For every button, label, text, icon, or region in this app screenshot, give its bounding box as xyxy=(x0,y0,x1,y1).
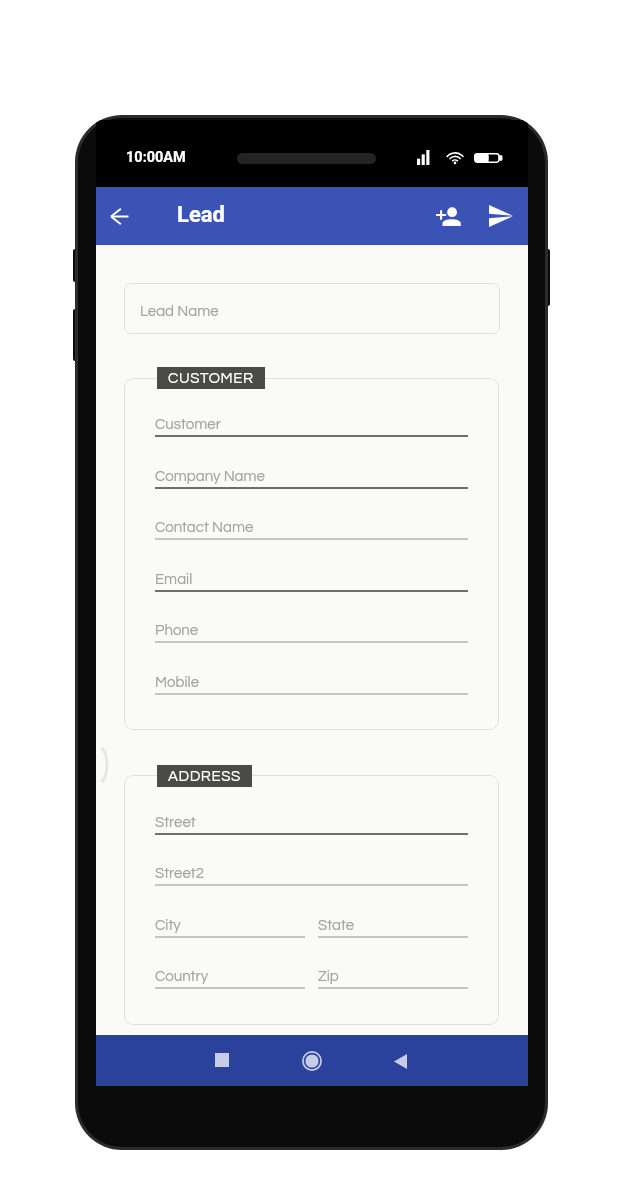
staticText: Mobile xyxy=(155,675,199,690)
button[interactable]: Country xyxy=(155,958,305,990)
button[interactable]: Mobile xyxy=(155,664,468,696)
button[interactable]: Contact Name xyxy=(155,509,468,541)
button[interactable]: Company Name xyxy=(155,458,468,490)
button[interactable]: City xyxy=(155,907,305,939)
staticText: Street2 xyxy=(155,866,204,881)
staticText: 10:00AM xyxy=(126,149,186,166)
button[interactable]: Street2 xyxy=(155,855,468,887)
button[interactable]: Phone xyxy=(155,612,468,644)
staticText: City xyxy=(155,918,181,933)
button[interactable]: Street xyxy=(155,804,468,836)
button[interactable]: Home xyxy=(290,1039,334,1083)
staticText: Company Name xyxy=(155,469,265,484)
button[interactable]: Zip xyxy=(318,958,468,990)
staticText: Lead Name xyxy=(140,304,219,319)
staticText: Lead xyxy=(177,202,225,228)
staticText: CUSTOMER xyxy=(168,371,254,386)
staticText: Customer xyxy=(155,417,221,432)
staticText: Country xyxy=(155,969,209,984)
staticText: Email xyxy=(155,572,193,587)
button[interactable]: State xyxy=(318,907,468,939)
staticText: Zip xyxy=(318,969,339,984)
staticText: ADDRESS xyxy=(168,769,241,784)
button[interactable]: Recents xyxy=(200,1038,244,1082)
button[interactable]: Add contact xyxy=(426,194,470,238)
staticText: Street xyxy=(155,815,196,830)
staticText: Contact Name xyxy=(155,520,254,535)
staticText: State xyxy=(318,918,354,933)
button[interactable]: Customer xyxy=(155,406,468,438)
button[interactable]: Back xyxy=(378,1039,422,1083)
button[interactable]: Lead Name xyxy=(124,283,500,334)
button[interactable]: Back xyxy=(97,194,141,238)
staticText: Phone xyxy=(155,623,199,638)
button[interactable]: Send xyxy=(479,194,523,238)
button[interactable]: Email xyxy=(155,561,468,593)
